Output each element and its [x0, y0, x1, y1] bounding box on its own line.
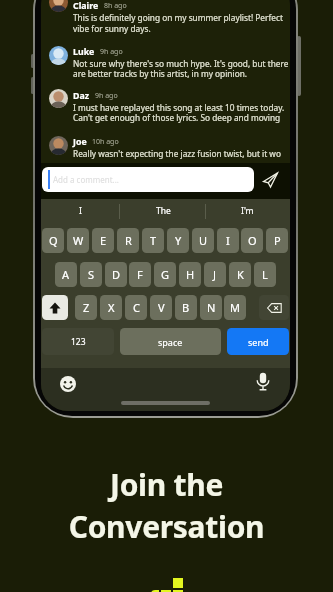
staticText: S	[88, 267, 95, 282]
button[interactable]: N	[200, 295, 222, 320]
staticText: Luke	[73, 46, 95, 58]
button[interactable]: F	[129, 262, 151, 287]
button[interactable]: T	[142, 228, 164, 253]
button[interactable]: space	[120, 328, 221, 355]
button[interactable]: C	[125, 295, 147, 320]
button[interactable]: X	[100, 295, 122, 320]
button[interactable]	[42, 295, 68, 320]
button[interactable]: Luke	[73, 46, 123, 58]
staticText: Really wasn't expecting the jazz fusion …	[73, 148, 281, 159]
staticText: Claire	[73, 0, 99, 12]
staticText: 8h ago	[104, 1, 127, 11]
button[interactable]: G	[154, 262, 176, 287]
button[interactable]: U	[192, 228, 214, 253]
staticText: I'm	[241, 205, 254, 217]
button[interactable]	[259, 295, 289, 320]
staticText: B	[182, 300, 190, 315]
button[interactable]: M	[224, 295, 246, 320]
button[interactable]: 123	[42, 328, 114, 355]
staticText: J	[213, 267, 217, 282]
button[interactable]: Y	[167, 228, 189, 253]
staticText: C	[133, 300, 140, 315]
staticText: G	[161, 267, 170, 282]
button[interactable]: O	[241, 228, 263, 253]
staticText: Add a comment...	[53, 174, 120, 185]
staticText: M	[230, 300, 240, 315]
staticText: K	[237, 267, 244, 282]
staticText: I	[226, 233, 230, 248]
staticText: O	[248, 233, 257, 248]
button[interactable]: E	[92, 228, 114, 253]
staticText: L	[262, 267, 268, 282]
staticText: N	[207, 300, 216, 315]
staticText: The	[156, 205, 171, 217]
staticText: P	[274, 233, 281, 248]
button[interactable]: I	[217, 228, 239, 253]
staticText: H	[186, 267, 195, 282]
button[interactable]: send	[227, 328, 289, 355]
staticText: are better tracks by this artist, in my …	[73, 68, 248, 79]
button[interactable]: P	[266, 228, 288, 253]
button[interactable]: Daz	[73, 90, 118, 102]
button[interactable]: B	[175, 295, 197, 320]
staticText: 10h ago	[92, 137, 119, 147]
staticText: F	[137, 267, 143, 282]
staticText: Z	[83, 300, 90, 315]
staticText: A	[62, 267, 70, 282]
staticText: V	[158, 300, 165, 315]
button[interactable]: A	[55, 262, 77, 287]
staticText: Y	[175, 233, 182, 248]
button[interactable]	[60, 376, 76, 392]
button[interactable]	[255, 372, 271, 392]
button[interactable]: Claire	[73, 0, 127, 12]
staticText: E	[100, 233, 107, 248]
button[interactable]: Joe	[73, 136, 119, 148]
staticText: U	[199, 233, 208, 248]
staticText: Q	[49, 233, 58, 248]
button[interactable]: L	[254, 262, 276, 287]
staticText: vibe for sunny days.	[73, 23, 151, 34]
staticText: 9h ago	[100, 47, 123, 57]
staticText: R	[125, 233, 132, 248]
staticText: X	[108, 300, 115, 315]
staticText: I must have replayed this song at least …	[73, 102, 285, 113]
staticText: Not sure why there's so much hype. It's …	[73, 58, 289, 69]
button[interactable]: D	[105, 262, 127, 287]
button[interactable]: Add a comment...	[42, 167, 254, 192]
staticText: space	[158, 336, 183, 348]
button[interactable]	[262, 172, 279, 188]
staticText: Conversation	[0, 506, 333, 547]
button[interactable]: V	[150, 295, 172, 320]
staticText: 9h ago	[95, 91, 118, 101]
staticText: 123	[71, 336, 86, 348]
button[interactable]: H	[179, 262, 201, 287]
staticText: Join the	[0, 464, 333, 505]
button[interactable]: J	[204, 262, 226, 287]
button[interactable]: Z	[75, 295, 97, 320]
button[interactable]: S	[80, 262, 102, 287]
staticText: Can't get enough of those lyrics. So dee…	[73, 112, 281, 123]
staticText: T	[150, 233, 157, 248]
button[interactable]: R	[117, 228, 139, 253]
button[interactable]: Q	[42, 228, 64, 253]
staticText: I	[79, 205, 82, 217]
button[interactable]: W	[67, 228, 89, 253]
staticText: Joe	[73, 136, 87, 148]
staticText: D	[112, 267, 121, 282]
staticText: W	[73, 233, 84, 248]
staticText: Daz	[73, 90, 90, 102]
staticText: This is definitely going on my summer pl…	[73, 12, 283, 23]
button[interactable]: K	[229, 262, 251, 287]
staticText: send	[248, 336, 269, 348]
